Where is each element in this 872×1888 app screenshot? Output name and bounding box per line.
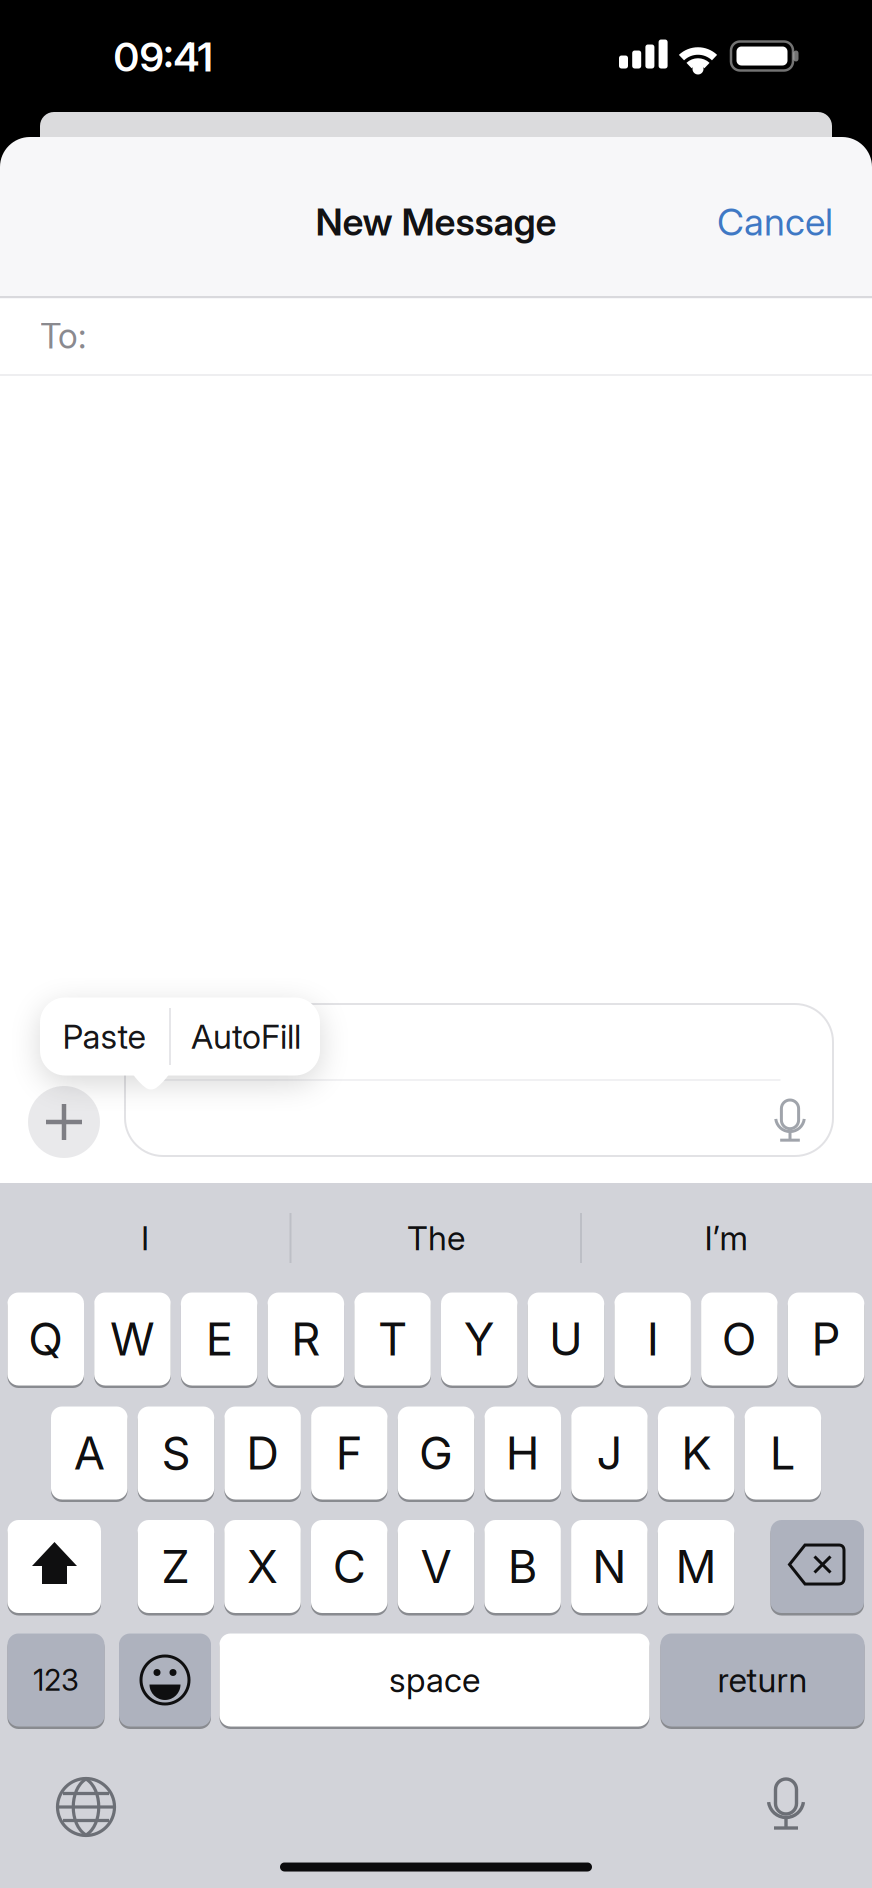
button[interactable] — [51, 1772, 121, 1842]
button[interactable]: T — [354, 1290, 431, 1387]
staticText: K — [681, 1426, 711, 1480]
button[interactable] — [770, 1518, 864, 1615]
staticText: D — [246, 1426, 279, 1480]
staticText: AutoFill — [191, 1017, 301, 1056]
button[interactable]: L — [745, 1404, 821, 1501]
button[interactable]: R — [268, 1290, 344, 1387]
button[interactable] — [750, 1768, 822, 1840]
button[interactable]: W — [94, 1290, 171, 1387]
button[interactable]: return — [660, 1631, 864, 1728]
staticText: L — [770, 1426, 796, 1480]
button[interactable] — [7, 1518, 101, 1615]
button[interactable]: B — [484, 1518, 561, 1615]
staticText: W — [110, 1312, 155, 1366]
staticText: F — [336, 1426, 363, 1480]
staticText: S — [161, 1426, 190, 1480]
staticText: 123 — [33, 1663, 79, 1697]
staticText: E — [206, 1312, 233, 1366]
button[interactable]: S — [138, 1404, 214, 1501]
staticText: O — [722, 1312, 757, 1366]
button[interactable]: X — [224, 1518, 301, 1615]
button[interactable]: F — [311, 1404, 388, 1501]
button[interactable]: E — [181, 1290, 257, 1387]
button[interactable]: Paste — [34, 997, 174, 1075]
button[interactable]: N — [571, 1518, 648, 1615]
staticText: T — [378, 1312, 407, 1366]
staticText: G — [419, 1426, 453, 1480]
staticText: I’m — [704, 1218, 747, 1258]
button[interactable]: Q — [7, 1290, 84, 1387]
staticText: Y — [464, 1312, 495, 1366]
staticText: N — [592, 1540, 626, 1593]
button[interactable]: J — [571, 1404, 648, 1501]
staticText: B — [508, 1540, 538, 1593]
staticText: Cancel — [717, 200, 833, 244]
button[interactable] — [28, 1086, 100, 1158]
staticText: Z — [161, 1540, 190, 1593]
button[interactable]: M — [658, 1518, 734, 1615]
staticText: return — [717, 1660, 807, 1700]
staticText: P — [812, 1312, 841, 1366]
staticText: space — [389, 1660, 480, 1700]
button[interactable]: D — [224, 1404, 301, 1501]
button[interactable]: O — [701, 1290, 778, 1387]
staticText: Paste — [62, 1017, 145, 1056]
staticText: 09:41 — [113, 33, 212, 81]
button[interactable]: Cancel — [665, 190, 872, 254]
button[interactable]: I — [614, 1290, 691, 1387]
button[interactable]: Y — [441, 1290, 517, 1387]
staticText: U — [549, 1312, 583, 1366]
staticText: Q — [28, 1312, 63, 1366]
button[interactable]: H — [484, 1404, 561, 1501]
button[interactable] — [119, 1631, 211, 1728]
button[interactable]: space — [219, 1631, 649, 1728]
staticText: The — [407, 1218, 465, 1258]
button[interactable] — [125, 1004, 833, 1156]
button[interactable]: To: — [0, 298, 872, 374]
staticText: To: — [40, 316, 86, 356]
staticText: M — [676, 1540, 717, 1593]
button[interactable]: V — [398, 1518, 474, 1615]
staticText: I — [647, 1312, 659, 1366]
button[interactable]: K — [658, 1404, 734, 1501]
button[interactable]: A — [51, 1404, 127, 1501]
button[interactable]: P — [788, 1290, 864, 1387]
button[interactable]: 123 — [7, 1631, 104, 1728]
staticText: R — [291, 1312, 320, 1366]
staticText: J — [596, 1426, 622, 1480]
button[interactable]: U — [528, 1290, 604, 1387]
button[interactable]: I’m — [586, 1188, 866, 1288]
staticText: A — [74, 1426, 105, 1480]
staticText: V — [420, 1540, 451, 1593]
staticText: C — [333, 1540, 366, 1593]
button[interactable]: AutoFill — [161, 997, 331, 1075]
button[interactable]: Z — [138, 1518, 214, 1615]
button[interactable]: C — [311, 1518, 387, 1615]
staticText: H — [506, 1426, 540, 1480]
button[interactable]: The — [296, 1188, 576, 1288]
button[interactable]: I — [5, 1188, 285, 1288]
staticText: I — [141, 1218, 149, 1258]
button[interactable]: G — [398, 1404, 474, 1501]
staticText: X — [247, 1540, 278, 1593]
staticText: New Message — [315, 200, 556, 244]
